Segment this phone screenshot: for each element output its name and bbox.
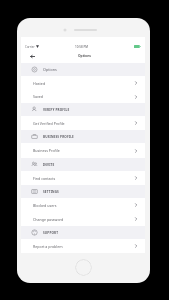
staticText: Report a problem: [33, 244, 63, 249]
staticText: Hosted: [33, 81, 46, 86]
button[interactable]: VERIFY PROFILE: [21, 103, 145, 116]
button[interactable]: Change password: [21, 212, 145, 226]
staticText: BUSINESS PROFILE: [43, 135, 74, 139]
button[interactable]: Hosted: [21, 76, 145, 90]
button[interactable]: BUSINESS PROFILE: [21, 130, 145, 143]
staticText: INVITE: [43, 163, 55, 167]
button[interactable]: Back: [27, 51, 38, 62]
staticText: Blocked users: [33, 203, 57, 208]
button[interactable]: Blocked users: [21, 198, 145, 212]
staticText: Options: [43, 67, 57, 72]
button[interactable]: INVITE: [21, 158, 145, 171]
staticText: VERIFY PROFILE: [43, 108, 70, 112]
staticText: Business Profile: [33, 148, 60, 153]
staticText: Change password: [33, 217, 64, 222]
button[interactable]: Find contacts: [21, 171, 145, 185]
button[interactable]: Home: [75, 259, 92, 276]
staticText: Options: [78, 53, 91, 57]
button[interactable]: Business Profile: [21, 143, 145, 158]
button[interactable]: Get Verified Profile: [21, 116, 145, 130]
staticText: SETTINGS: [43, 190, 59, 194]
staticText: Carrier: [25, 45, 35, 49]
staticText: SUPPORT: [43, 231, 59, 235]
button[interactable]: Saved: [21, 90, 145, 103]
staticText: 10:58 PM: [75, 45, 89, 49]
staticText: Get Verified Profile: [33, 121, 65, 126]
staticText: Find contacts: [33, 176, 56, 181]
staticText: Saved: [33, 94, 44, 99]
button[interactable]: SUPPORT: [21, 226, 145, 239]
button[interactable]: Report a problem: [21, 239, 145, 253]
button[interactable]: Options: [21, 63, 145, 76]
button[interactable]: SETTINGS: [21, 185, 145, 198]
